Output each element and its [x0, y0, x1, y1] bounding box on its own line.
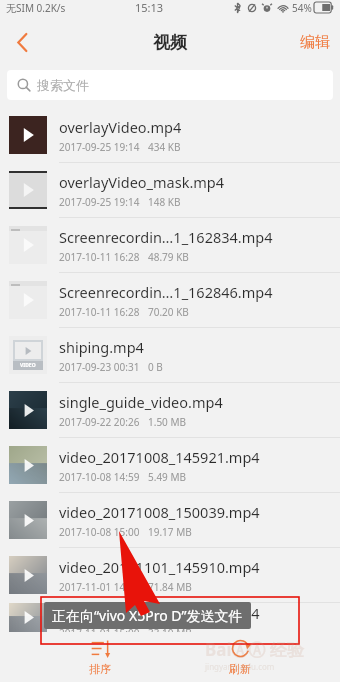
staticText: overlayVideo.mp4 — [59, 117, 182, 137]
staticText: 1.50 MB — [148, 415, 187, 429]
staticText: 2017-11-01 14:59 — [59, 580, 140, 594]
staticText: 2017-09-23 00:31 — [59, 360, 140, 374]
staticText: 2017-10-08 15:00 — [59, 525, 140, 539]
staticText: video_20171101_145910.mp4 — [59, 557, 260, 577]
staticText: 编辑 — [300, 33, 330, 52]
staticText: shiping.mp4 — [59, 337, 144, 357]
staticText: 434 KB — [148, 140, 181, 154]
staticText: 19.17 MB — [148, 525, 192, 539]
staticText: video_20171101_150029.mp4 — [59, 603, 260, 623]
button[interactable]: video_20171101_150029.mp4 — [0, 603, 340, 632]
button[interactable]: video_20171101_145910.mp4 — [0, 548, 340, 603]
button[interactable]: Screenrecordin…1_162834.mp4 — [0, 218, 340, 273]
staticText: Screenrecordin…1_162846.mp4 — [59, 282, 273, 302]
staticText: 54% — [292, 1, 312, 15]
staticText: 搜索文件 — [37, 77, 89, 93]
staticText: 2017-11-01 15:00 — [59, 626, 140, 632]
staticText: 0 B — [148, 360, 163, 374]
staticText: BaiⒶⒶ 经验 — [205, 638, 304, 661]
button[interactable]: 刷新 — [200, 632, 280, 682]
staticText: 刷新 — [229, 662, 251, 676]
staticText: video_20171008_150039.mp4 — [59, 502, 260, 522]
button[interactable]: video_20171008_145921.mp4 — [0, 438, 340, 493]
button[interactable]: overlayVideo.mp4 — [0, 108, 340, 163]
button[interactable]: overlayVideo_mask.mp4 — [0, 163, 340, 218]
staticText: 5.49 MB — [148, 470, 187, 484]
staticText: video_20171008_145921.mp4 — [59, 447, 260, 467]
staticText: 71.84 MB — [148, 580, 192, 594]
staticText: 148 KB — [148, 195, 181, 209]
staticText: 2017-10-11 16:28 — [59, 250, 140, 264]
staticText: 2017-10-11 16:28 — [59, 305, 140, 319]
button[interactable]: Screenrecordin…1_162846.mp4 — [0, 273, 340, 328]
staticText: Screenrecordin…1_162834.mp4 — [59, 227, 273, 247]
button[interactable]: VIDEO — [0, 328, 340, 383]
staticText: single_guide_video.mp4 — [59, 392, 223, 412]
button[interactable]: Back — [0, 22, 44, 62]
button[interactable]: video_20171008_150039.mp4 — [0, 493, 340, 548]
button[interactable]: single_guide_video.mp4 — [0, 383, 340, 438]
staticText: 2017-09-22 20:26 — [59, 415, 140, 429]
staticText: 排序 — [89, 662, 111, 676]
staticText: 正在向“vivo X5Pro D”发送文件 — [52, 606, 243, 625]
staticText: 2017-09-25 19:14 — [59, 195, 140, 209]
staticText: 2017-09-25 19:14 — [59, 140, 140, 154]
button[interactable]: 编辑 — [300, 33, 330, 52]
staticText: VIDEO — [20, 362, 36, 369]
button[interactable]: 搜索文件 — [7, 70, 333, 100]
staticText: 视频 — [153, 32, 187, 53]
staticText: 15:13 — [135, 0, 164, 15]
staticText: jingyan.baidu.com — [205, 661, 275, 672]
button[interactable]: 排序 — [60, 632, 140, 682]
staticText: 33.10 MB — [148, 626, 192, 632]
staticText: 无SIM 0.2K/s — [6, 1, 66, 15]
staticText: 70.20 KB — [148, 305, 189, 319]
staticText: overlayVideo_mask.mp4 — [59, 172, 225, 192]
staticText: 48.79 KB — [148, 250, 189, 264]
staticText: 2017-10-08 14:59 — [59, 470, 140, 484]
